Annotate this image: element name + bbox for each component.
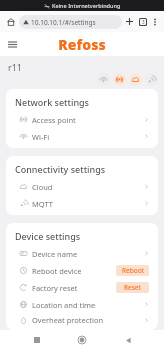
staticText: Reset — [124, 283, 141, 292]
button[interactable]: Reset — [116, 282, 149, 293]
staticText: Device name — [32, 249, 78, 259]
staticText: 3 — [142, 19, 145, 25]
button[interactable]: MQTT — [6, 195, 158, 212]
staticText: Refoss — [58, 35, 106, 54]
button[interactable]: MQTT status — [145, 73, 158, 86]
button[interactable]: Overheat protection — [6, 313, 158, 327]
button[interactable]: Reboot — [116, 265, 149, 276]
staticText: Reboot — [122, 266, 144, 275]
button[interactable]: Access point status — [113, 73, 126, 86]
staticText: Keine Internetverbindung — [52, 2, 121, 9]
button[interactable]: Tabs — [136, 15, 149, 28]
button[interactable]: Cloud — [6, 178, 158, 195]
staticText: Device settings — [15, 230, 81, 242]
staticText: Access point — [32, 115, 76, 125]
button[interactable]: Location and time — [6, 296, 158, 313]
button[interactable]: Factory reset — [6, 279, 158, 296]
staticText: Overheat protection — [32, 315, 104, 325]
staticText: Wi-Fi — [32, 132, 50, 142]
button[interactable]: Device name — [6, 245, 158, 262]
staticText: Cloud — [32, 182, 53, 192]
button[interactable]: New tab — [123, 15, 136, 28]
staticText: Reboot device — [32, 266, 82, 276]
staticText: Location and time — [32, 300, 96, 310]
button[interactable]: More options — [149, 16, 160, 27]
staticText: 10.10.10.1/#/settings — [31, 18, 96, 27]
staticText: r11 — [8, 61, 23, 73]
button[interactable]: 10.10.10.1/#/settings — [19, 15, 122, 29]
button[interactable]: Menu — [3, 35, 21, 53]
staticText: Connectivity settings — [15, 163, 106, 175]
button[interactable]: Back — [119, 331, 137, 349]
button[interactable]: Home — [73, 331, 91, 349]
button[interactable]: Wi-Fi — [6, 128, 158, 145]
button[interactable]: Recents — [28, 331, 46, 349]
staticText: Factory reset — [32, 283, 78, 293]
button[interactable]: Cloud status — [129, 73, 142, 86]
button[interactable]: Wi-Fi status — [97, 73, 110, 86]
button[interactable]: Access point — [6, 111, 158, 128]
staticText: Network settings — [15, 96, 89, 108]
staticText: MQTT — [32, 199, 53, 209]
button[interactable]: Home — [4, 15, 18, 29]
button[interactable]: Reboot device — [6, 262, 158, 279]
